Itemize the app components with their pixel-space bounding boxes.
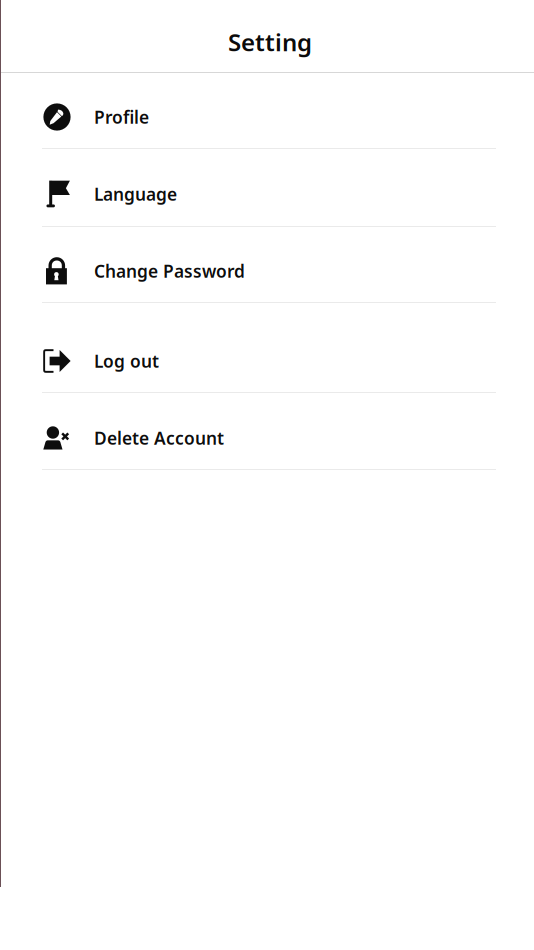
staticText: Log out (94, 349, 159, 372)
button[interactable]: Delete Account (0, 393, 534, 469)
staticText: Change Password (94, 259, 245, 282)
button[interactable]: Change Password (0, 227, 534, 302)
staticText: Profile (94, 105, 149, 128)
staticText: Language (94, 182, 177, 205)
staticText: Delete Account (94, 426, 224, 449)
staticText: Setting (228, 26, 312, 58)
button[interactable]: Log out (0, 303, 534, 392)
button[interactable]: Language (0, 149, 534, 226)
button[interactable]: Profile (0, 73, 534, 148)
